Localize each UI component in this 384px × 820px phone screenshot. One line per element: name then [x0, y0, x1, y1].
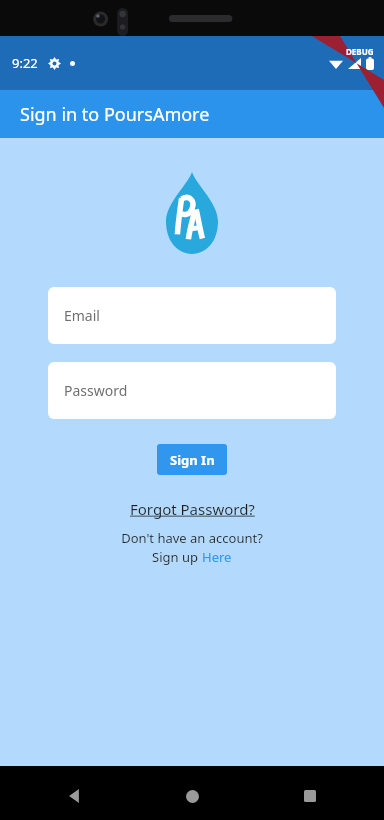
staticText: Password [64, 381, 128, 400]
staticText: DEBUG [346, 46, 374, 57]
staticText: Email [64, 306, 100, 325]
button[interactable]: Sign In [157, 444, 227, 475]
staticText: Forgot Password? [130, 499, 255, 519]
button[interactable]: Home [174, 778, 210, 814]
staticText: Sign in to PoursAmore [20, 102, 210, 127]
button[interactable]: Password [48, 362, 336, 419]
staticText: Sign up [152, 548, 202, 566]
staticText: Here [202, 548, 232, 566]
button[interactable]: Recent apps [292, 778, 328, 814]
button[interactable]: Here [202, 548, 232, 566]
staticText: Sign In [170, 451, 215, 469]
button[interactable]: Back [56, 778, 92, 814]
staticText: 9:22 [12, 54, 38, 72]
button[interactable]: Forgot Password? [124, 497, 261, 521]
button[interactable]: Email [48, 287, 336, 344]
staticText: Don't have an account? [121, 529, 263, 547]
